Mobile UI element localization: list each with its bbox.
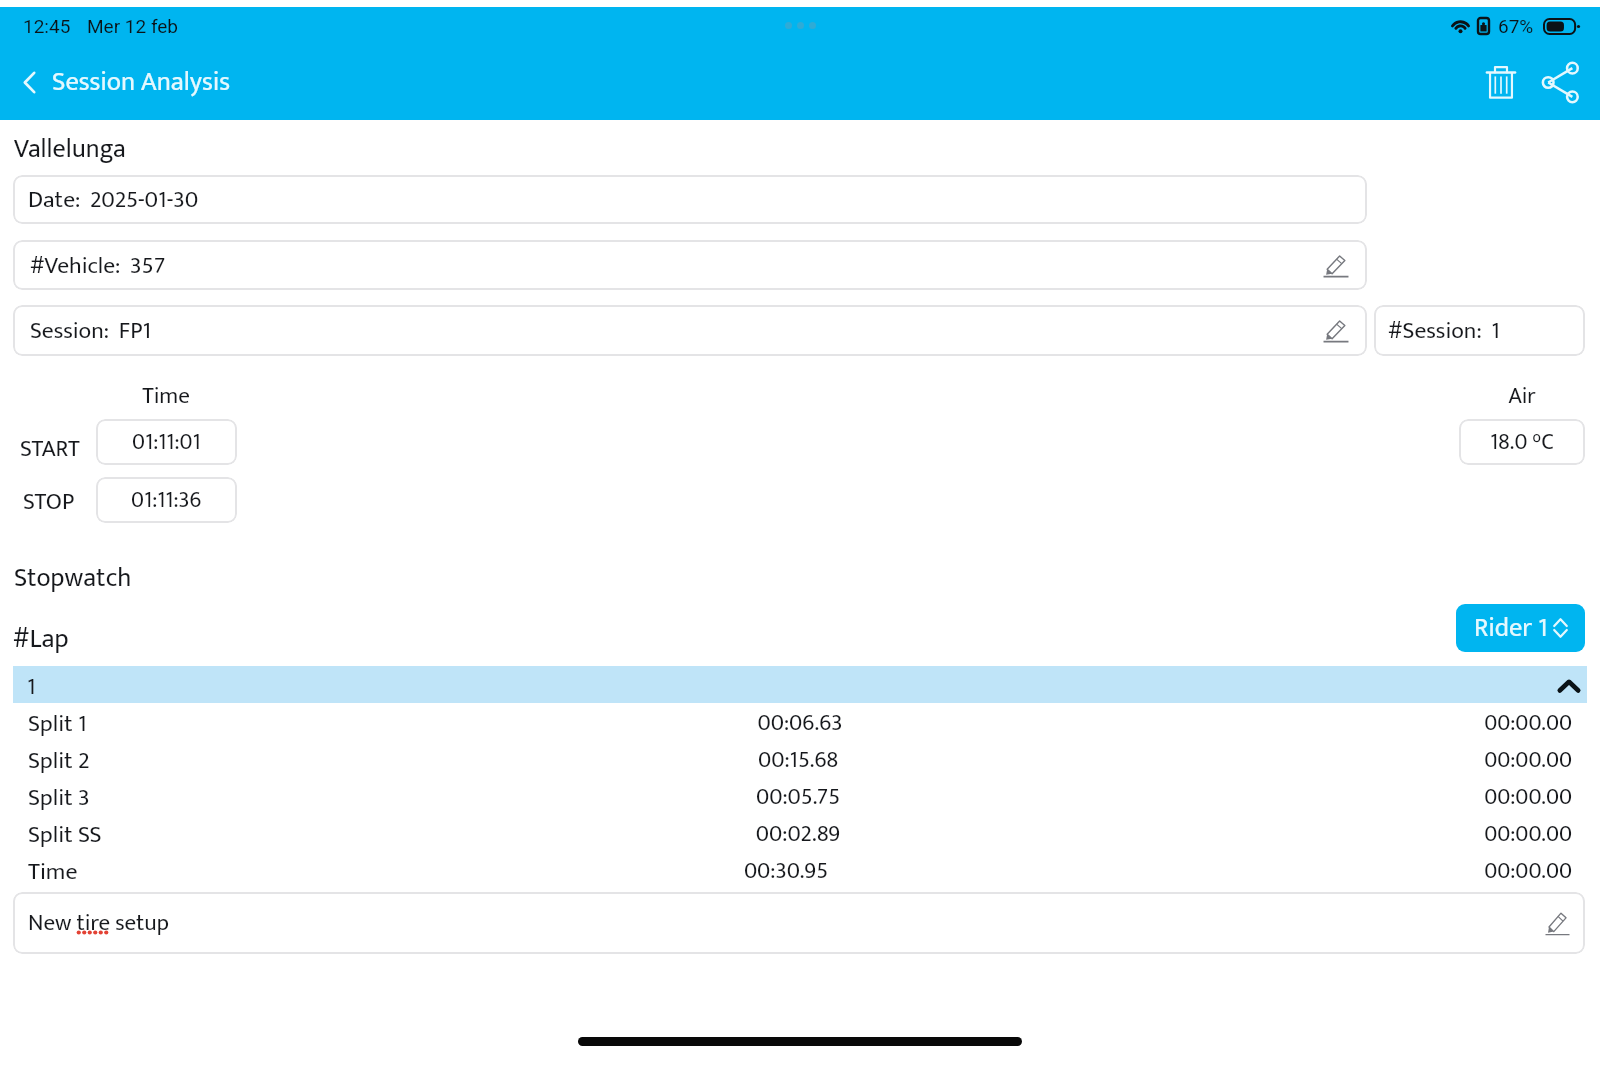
staticText: Stopwatch xyxy=(14,556,132,600)
staticText: New tire setup xyxy=(28,904,169,942)
staticText: Split 2 xyxy=(28,741,90,778)
staticText: START xyxy=(20,429,80,468)
staticText: 00:00.00 xyxy=(1372,741,1572,778)
button[interactable]: 18.0 °C xyxy=(1459,419,1585,465)
button[interactable]: Split 3 xyxy=(13,778,1587,815)
staticText: 12:45 xyxy=(23,15,71,37)
button[interactable]: Split 2 xyxy=(13,741,1587,778)
staticText: Split SS xyxy=(28,815,102,852)
staticText: Rider 1 xyxy=(1474,606,1548,650)
staticText: 00:00.00 xyxy=(1372,778,1572,815)
staticText: Mer 12 feb xyxy=(87,15,179,37)
staticText: 01:11:36 xyxy=(131,482,202,519)
staticText: Date: 2025-01-30 xyxy=(28,180,199,219)
button[interactable]: Session: FP1 xyxy=(13,305,1367,356)
button[interactable]: 1 xyxy=(13,666,1587,703)
staticText: 00:02.89 xyxy=(698,815,898,852)
staticText: Vallelunga xyxy=(14,128,126,171)
button[interactable]: New tire setup xyxy=(13,892,1585,954)
staticText: 01:11:01 xyxy=(132,424,201,461)
button[interactable]: Split SS xyxy=(13,815,1587,852)
staticText: Session: FP1 xyxy=(30,311,151,350)
button[interactable]: 01:11:36 xyxy=(96,477,237,523)
staticText: 00:00.00 xyxy=(1372,704,1572,741)
button[interactable]: Session Analysis xyxy=(11,50,241,114)
button[interactable]: #Session: 1 xyxy=(1374,305,1585,356)
staticText: Air xyxy=(1472,378,1572,415)
button[interactable]: Delete xyxy=(1481,55,1529,109)
staticText: 00:00.00 xyxy=(1372,852,1572,889)
staticText: Time xyxy=(28,852,78,889)
button[interactable]: Share xyxy=(1534,56,1587,109)
staticText: #Vehicle: 357 xyxy=(30,246,166,285)
staticText: #Session: 1 xyxy=(1388,311,1500,350)
staticText: 67% xyxy=(1498,15,1534,37)
staticText: 00:05.75 xyxy=(698,778,898,815)
staticText: Split 3 xyxy=(28,778,90,815)
staticText: 00:15.68 xyxy=(698,741,898,778)
staticText: Session Analysis xyxy=(52,60,231,104)
staticText: 1 xyxy=(27,667,36,704)
button[interactable]: 01:11:01 xyxy=(96,419,237,465)
button[interactable]: Rider 1 xyxy=(1456,604,1585,652)
staticText: 00:06.63 xyxy=(700,704,900,741)
button[interactable]: #Vehicle: 357 xyxy=(13,240,1367,290)
staticText: 00:30.95 xyxy=(686,852,886,889)
staticText: 18.0 °C xyxy=(1490,424,1554,461)
staticText: Split 1 xyxy=(28,704,87,741)
button[interactable]: Time xyxy=(13,852,1587,889)
button[interactable]: Split 1 xyxy=(13,704,1587,741)
staticText: #Lap xyxy=(13,617,69,661)
staticText: Time xyxy=(116,377,216,415)
staticText: STOP xyxy=(23,482,75,521)
button[interactable]: Date: 2025-01-30 xyxy=(13,175,1367,224)
staticText: 00:00.00 xyxy=(1372,815,1572,852)
